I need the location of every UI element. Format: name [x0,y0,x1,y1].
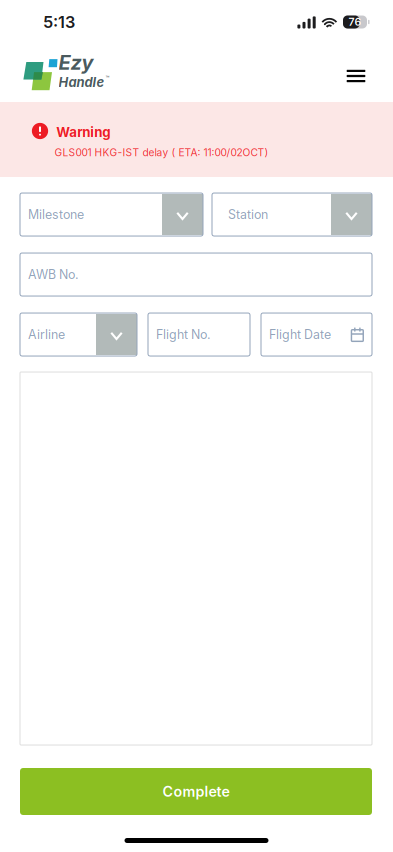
staticText: 76 [348,16,361,28]
staticText: Airline [28,327,65,342]
staticText: Ezy [59,50,94,74]
staticText: 5:13 [43,12,75,32]
button[interactable]: Menu [334,54,378,98]
staticText: Station [228,207,268,222]
staticText: Warning [56,124,110,140]
staticText: Flight Date [269,327,331,342]
staticText: Handle [59,74,105,90]
button[interactable]: Complete [20,768,372,815]
staticText: AWB No. [28,267,79,282]
staticText: Complete [162,783,229,800]
staticText: ™ [106,74,110,82]
staticText: Flight No. [156,327,211,342]
staticText: GLS001 HKG-IST delay ( ETA: 11:00/02OCT) [55,146,269,159]
staticText: Milestone [28,207,84,222]
